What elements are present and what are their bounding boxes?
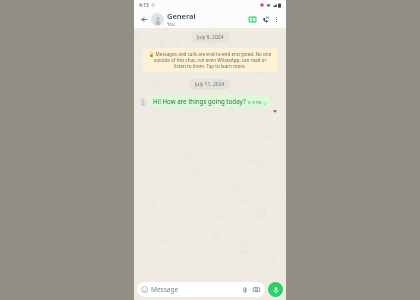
staticText: 8:19 PM (248, 100, 262, 105)
button[interactable]: Group photo (151, 13, 164, 26)
button[interactable]: Message (137, 282, 265, 297)
staticText: Message (151, 285, 179, 294)
button[interactable]: Voice call (259, 13, 271, 25)
button[interactable]: Hi! How are things going today? (149, 95, 270, 107)
staticText: 🔒 Messages and calls are end-to-end encr… (148, 51, 272, 69)
button[interactable]: July 11, 2024 (195, 81, 225, 88)
staticText: July 11, 2024 (195, 81, 225, 88)
staticText: You (167, 21, 175, 27)
button[interactable]: Video call (246, 13, 258, 25)
button[interactable]: Camera (252, 285, 261, 294)
button[interactable]: More options (271, 14, 282, 25)
button[interactable]: 🔒 Messages and calls are end-to-end encr… (148, 51, 272, 69)
button[interactable]: General (167, 11, 246, 27)
button[interactable]: July 9, 2024 (197, 34, 224, 41)
button[interactable]: Back (138, 13, 150, 25)
button[interactable]: Voice message (268, 282, 283, 297)
button[interactable]: Attach (240, 285, 249, 294)
staticText: 4:13 (139, 2, 149, 9)
staticText: General (167, 11, 196, 21)
button[interactable]: Heart reaction (272, 108, 278, 114)
staticText: Hi! How are things going today? (153, 97, 246, 105)
staticText: July 9, 2024 (197, 34, 224, 41)
